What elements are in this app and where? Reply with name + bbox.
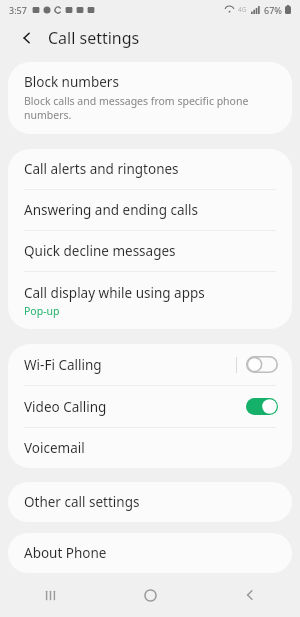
staticText: Pop-up [24,304,60,318]
staticText: Call alerts and ringtones [24,160,179,178]
staticText: Block numbers [24,73,119,91]
staticText: 67% [264,4,282,16]
staticText: About Phone [24,544,107,562]
button[interactable]: Home [100,573,200,617]
staticText: 3:57 [9,4,27,16]
staticText: Quick decline messages [24,242,176,260]
button[interactable]: Toggle on [246,398,278,415]
button[interactable]: Video Calling [8,386,292,427]
staticText: Call display while using apps [24,284,205,302]
button[interactable]: Quick decline messages [8,231,292,271]
button[interactable]: Back [14,25,40,51]
staticText: 4G [238,5,247,14]
staticText: Voicemail [24,439,85,457]
button[interactable]: About Phone [8,533,292,573]
button[interactable]: Wi-Fi Calling [8,344,292,385]
staticText: Block calls and messages from specific p… [24,94,276,122]
button[interactable]: Call display while using apps [8,272,292,329]
button[interactable]: Recent apps [0,573,100,617]
staticText: Video Calling [24,398,107,416]
button[interactable]: Back [200,573,300,617]
staticText: Other call settings [24,493,140,511]
staticText: Call settings [48,27,140,49]
button[interactable]: Answering and ending calls [8,190,292,230]
button[interactable]: Other call settings [8,482,292,522]
staticText: Wi-Fi Calling [24,356,102,374]
button[interactable]: Call alerts and ringtones [8,149,292,189]
staticText: Answering and ending calls [24,201,198,219]
button[interactable]: Toggle off [246,356,278,373]
button[interactable]: Block numbers [8,62,292,134]
button[interactable]: Voicemail [8,428,292,468]
